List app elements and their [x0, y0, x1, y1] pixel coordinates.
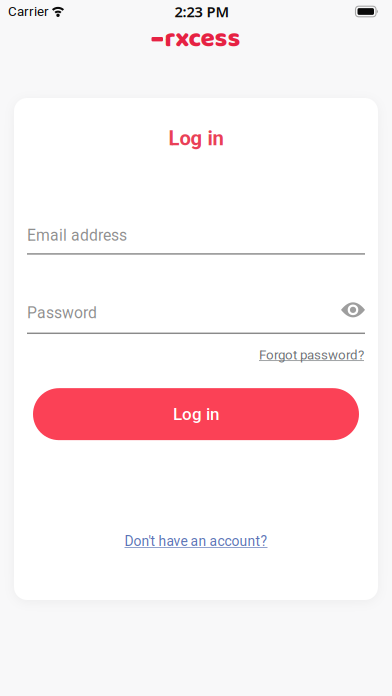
button[interactable]: Don't have an account?: [124, 533, 267, 549]
staticText: Password: [27, 304, 97, 322]
staticText: Email address: [27, 226, 127, 245]
button[interactable]: Password: [27, 304, 365, 334]
staticText: 2:23 PM: [174, 2, 229, 21]
button[interactable]: Email address: [27, 226, 365, 255]
staticText: Forgot password?: [259, 347, 364, 363]
staticText: Don't have an account?: [124, 533, 267, 549]
staticText: Log in: [168, 126, 223, 150]
button[interactable]: Show password: [341, 302, 365, 318]
staticText: Carrier: [8, 4, 49, 19]
button[interactable]: Forgot password?: [259, 347, 364, 363]
button[interactable]: Log in: [33, 388, 359, 440]
staticText: Log in: [173, 404, 219, 424]
staticText: rxcess: [164, 18, 240, 60]
